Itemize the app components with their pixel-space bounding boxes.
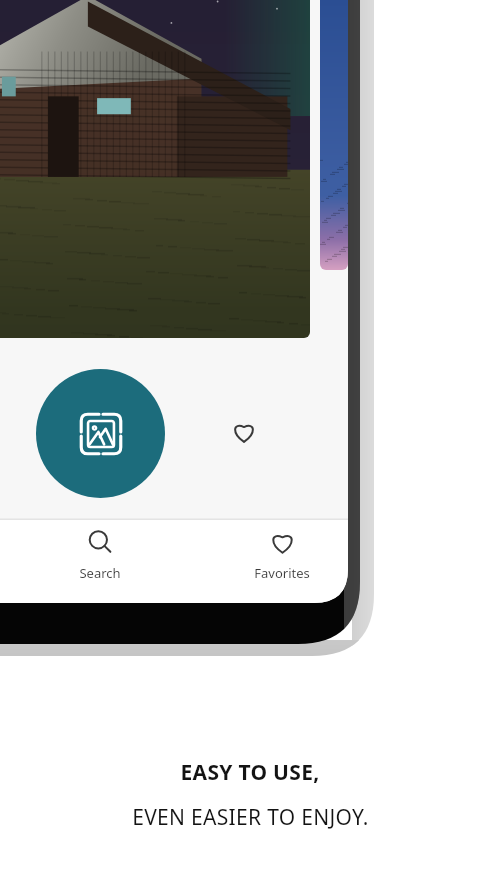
staticText: Favorites [254,564,310,582]
staticText: EASY TO USE, [180,758,320,787]
button[interactable]: Search [56,527,144,595]
button[interactable]: Favorites [238,527,326,595]
staticText: EVEN EASIER TO ENJOY. [132,803,369,832]
button[interactable]: Favorite [220,408,268,456]
staticText: Search [79,564,121,582]
button[interactable]: Set wallpaper [36,369,165,498]
